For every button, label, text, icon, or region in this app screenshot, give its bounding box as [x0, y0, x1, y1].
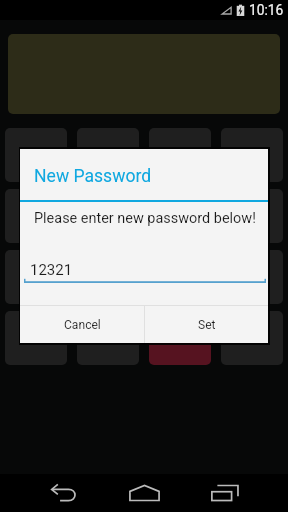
- button[interactable]: [77, 311, 139, 365]
- staticText: Cancel: [64, 318, 101, 332]
- button[interactable]: [5, 311, 67, 365]
- button[interactable]: [149, 128, 211, 182]
- button[interactable]: [5, 189, 67, 243]
- staticText: Set: [198, 318, 216, 332]
- button[interactable]: [77, 250, 139, 304]
- button[interactable]: [149, 311, 211, 365]
- staticText: 12321: [30, 261, 73, 279]
- button[interactable]: [149, 189, 211, 243]
- button[interactable]: [5, 250, 67, 304]
- button[interactable]: [221, 250, 283, 304]
- button[interactable]: Back: [40, 474, 88, 512]
- button[interactable]: Recent apps: [201, 474, 249, 512]
- button[interactable]: Cancel: [20, 306, 144, 343]
- button[interactable]: [149, 250, 211, 304]
- button[interactable]: Set: [145, 306, 268, 343]
- staticText: Please enter new password below!: [34, 210, 256, 227]
- button[interactable]: [5, 128, 67, 182]
- button[interactable]: [221, 189, 283, 243]
- button[interactable]: [221, 311, 283, 365]
- staticText: 10:16: [249, 2, 284, 18]
- button[interactable]: [221, 128, 283, 182]
- staticText: New Password: [34, 166, 152, 187]
- button[interactable]: [77, 128, 139, 182]
- button[interactable]: Home: [120, 474, 168, 512]
- button[interactable]: [77, 189, 139, 243]
